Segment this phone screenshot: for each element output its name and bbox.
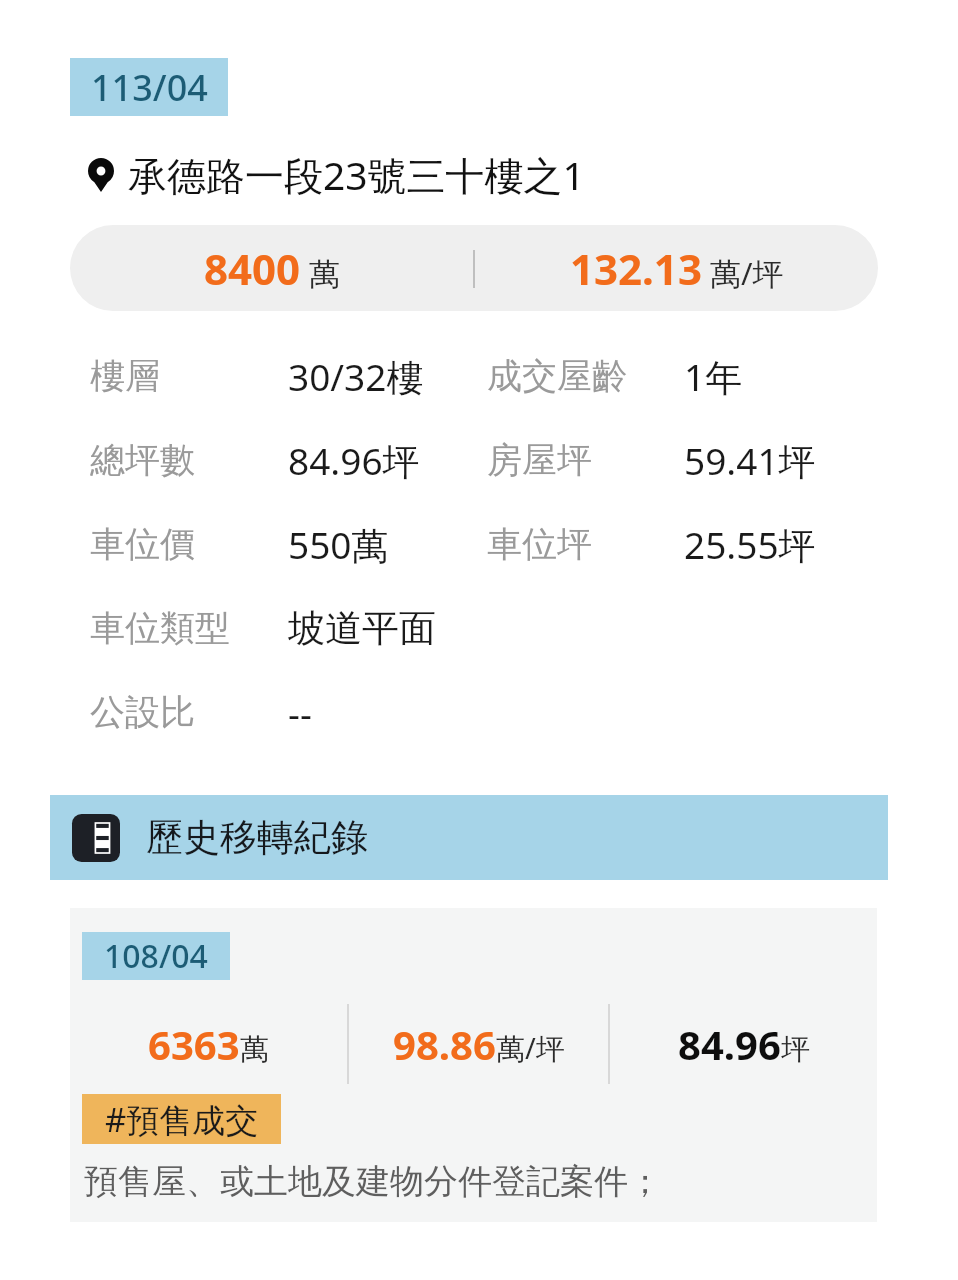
button[interactable]: 8400 <box>70 225 878 311</box>
staticText: 車位類型 <box>90 606 230 650</box>
button[interactable]: 歷史移轉紀錄 <box>50 795 888 880</box>
staticText: 113/04 <box>91 63 208 112</box>
staticText: 84.96 <box>678 1017 781 1071</box>
staticText: 8400 <box>204 240 301 297</box>
staticText: 25.55坪 <box>684 519 816 570</box>
button[interactable]: 113/04 <box>70 58 228 116</box>
button[interactable]: 108/04 <box>70 908 877 1222</box>
staticText: 萬/坪 <box>710 252 784 294</box>
staticText: 預售屋、或土地及建物分件登記案件； <box>84 1160 662 1203</box>
staticText: 108/04 <box>104 934 208 978</box>
staticText: 萬/坪 <box>496 1028 565 1068</box>
staticText: 車位價 <box>90 522 195 566</box>
staticText: -- <box>288 687 312 737</box>
button[interactable]: #預售成交 <box>82 1094 281 1144</box>
staticText: 承德路一段23號三十樓之1 <box>128 148 585 201</box>
staticText: 98.86 <box>393 1017 496 1071</box>
staticText: 車位坪 <box>487 522 592 566</box>
other: 位置 <box>88 158 114 192</box>
button[interactable]: 位置 <box>0 148 958 201</box>
staticText: 坡道平面 <box>288 605 436 652</box>
staticText: 歷史移轉紀錄 <box>146 814 368 861</box>
staticText: 84.96坪 <box>288 435 420 486</box>
staticText: 坪 <box>781 1031 810 1068</box>
staticText: 59.41坪 <box>684 435 816 486</box>
staticText: 成交屋齡 <box>487 354 627 398</box>
other: 歷史移轉紀錄 <box>72 814 120 862</box>
staticText: 132.13 <box>570 240 702 297</box>
staticText: 總坪數 <box>90 438 195 482</box>
staticText: 萬 <box>240 1031 269 1068</box>
staticText: 1年 <box>684 351 743 402</box>
staticText: #預售成交 <box>105 1097 259 1142</box>
staticText: 30/32樓 <box>288 351 424 402</box>
staticText: 公設比 <box>90 690 195 734</box>
staticText: 萬 <box>309 255 340 294</box>
staticText: 樓層 <box>90 354 160 398</box>
staticText: 6363 <box>148 1017 240 1071</box>
staticText: 房屋坪 <box>487 438 592 482</box>
staticText: 550萬 <box>288 519 389 570</box>
